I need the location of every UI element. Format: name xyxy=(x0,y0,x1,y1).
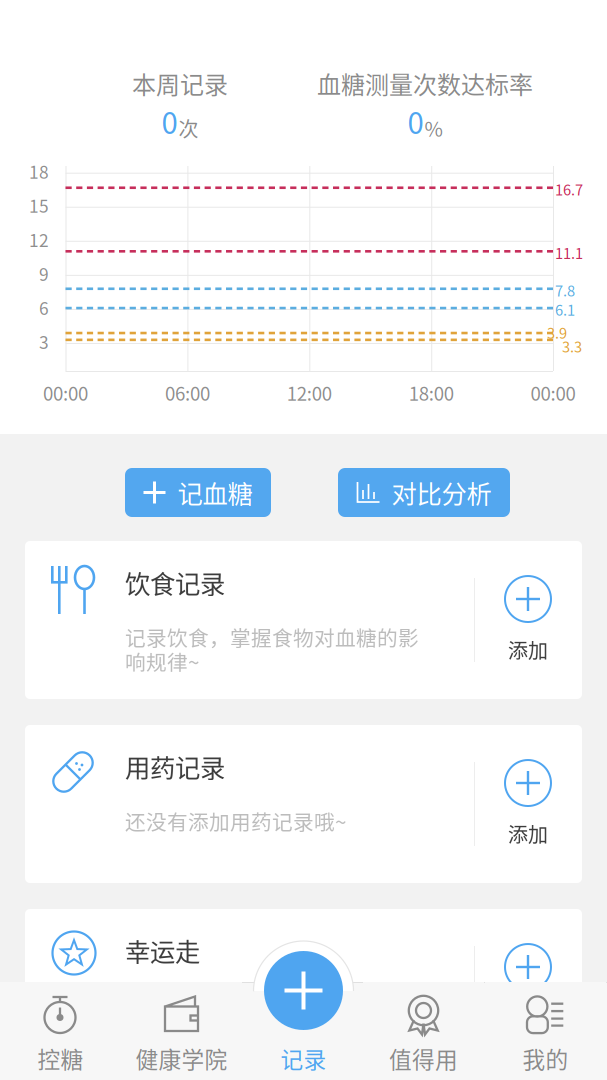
staticText: 6 xyxy=(39,295,49,320)
button[interactable]: 对比分析 xyxy=(338,468,510,517)
staticText: 16.7 xyxy=(555,178,583,200)
staticText: 18 xyxy=(29,159,49,184)
staticText: 6.1 xyxy=(555,299,575,320)
staticText: % xyxy=(424,113,442,142)
staticText: 0 xyxy=(407,100,423,142)
staticText: 次 xyxy=(178,113,198,142)
staticText: 我的 xyxy=(522,1042,568,1075)
staticText: 0 xyxy=(161,100,177,142)
staticText: 12 xyxy=(29,227,49,252)
staticText: 控糖 xyxy=(37,1042,83,1075)
staticText: 记血糖 xyxy=(177,474,252,511)
button[interactable]: 添加 xyxy=(474,541,582,699)
button[interactable]: 控糖 xyxy=(0,982,121,1080)
staticText: 3.3 xyxy=(562,335,582,357)
staticText: 幸运走 xyxy=(125,932,200,969)
staticText: 健康学院 xyxy=(135,1042,227,1075)
staticText: 15 xyxy=(29,193,49,218)
staticText: 值得用 xyxy=(389,1042,458,1075)
button[interactable]: 记血糖 xyxy=(125,468,271,517)
button[interactable]: 我的 xyxy=(485,982,606,1080)
staticText: 3.9 xyxy=(547,322,567,343)
staticText: 响规律~ xyxy=(125,646,199,676)
button[interactable]: 添加 xyxy=(474,725,582,883)
button[interactable]: 添加 xyxy=(474,909,582,1067)
staticText: 11.1 xyxy=(555,242,583,263)
staticText: 用药记录 xyxy=(125,748,225,785)
staticText: 添加 xyxy=(508,819,548,848)
button[interactable]: 值得用 xyxy=(363,982,484,1080)
button[interactable]: 饮食记录 xyxy=(25,541,582,699)
staticText: 记录 xyxy=(280,1042,326,1075)
staticText: 本周记录 xyxy=(132,66,228,101)
button[interactable]: 健康学院 xyxy=(121,982,242,1080)
staticText: 血糖测量次数达标率 xyxy=(317,66,533,101)
staticText: 00:00 xyxy=(43,379,88,406)
staticText: 9 xyxy=(39,261,49,286)
staticText: 饮食记录 xyxy=(125,564,225,601)
staticText: 7.8 xyxy=(555,279,575,301)
staticText: 还没有添加用药记录哦~ xyxy=(125,806,346,836)
staticText: 18:00 xyxy=(409,379,454,406)
button[interactable]: 幸运走 xyxy=(25,909,582,1067)
staticText: 00:00 xyxy=(530,379,575,406)
staticText: 记录饮食，掌握食物对血糖的影 xyxy=(125,622,419,652)
staticText: 3 xyxy=(39,329,49,354)
button[interactable]: 用药记录 xyxy=(25,725,582,883)
staticText: 对比分析 xyxy=(391,474,491,511)
staticText: 12:00 xyxy=(287,379,332,406)
staticText: 添加 xyxy=(508,635,548,664)
staticText: 06:00 xyxy=(165,379,210,406)
staticText: 添加 xyxy=(508,1003,548,1032)
